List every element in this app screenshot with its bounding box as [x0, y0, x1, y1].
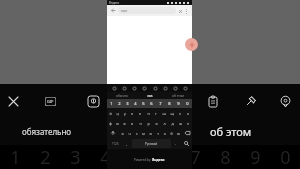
button[interactable]: д [168, 118, 176, 128]
button[interactable]: г [152, 108, 160, 118]
button[interactable]: как [118, 7, 176, 14]
button[interactable]: т [154, 128, 161, 138]
staticText: х [187, 111, 189, 116]
button[interactable]: GIF [42, 93, 58, 109]
button[interactable]: как [136, 92, 164, 99]
button[interactable]: р [144, 118, 152, 128]
button[interactable]: Close [5, 93, 21, 109]
button[interactable]: м [140, 128, 147, 138]
staticText: г [155, 111, 157, 116]
button[interactable]: с [133, 128, 140, 138]
button[interactable]: 0 [183, 99, 192, 108]
button[interactable]: е [136, 108, 144, 118]
button[interactable]: б [168, 128, 175, 138]
staticText: б [170, 131, 173, 136]
staticText: ?123 [112, 142, 119, 146]
button[interactable]: в [121, 118, 128, 128]
button[interactable]: 2 [115, 99, 123, 108]
button[interactable]: Shift [107, 128, 118, 138]
staticText: з [179, 111, 181, 116]
button[interactable]: ю [175, 128, 182, 138]
button[interactable]: об этом [164, 92, 192, 99]
button[interactable]: Keyboard tool 6 [162, 85, 168, 91]
button[interactable]: я [118, 128, 126, 138]
button[interactable]: 4 [131, 99, 139, 108]
staticText: 7 [159, 101, 162, 106]
staticText: 8 [220, 145, 231, 169]
button[interactable]: ш [160, 108, 168, 118]
staticText: р [147, 121, 150, 126]
staticText: 6 [150, 101, 153, 106]
button[interactable]: 8 [165, 99, 174, 108]
button[interactable]: Pin [243, 93, 259, 109]
button[interactable]: Keyboard tool 2 [121, 85, 127, 91]
button[interactable]: Backspace [182, 128, 192, 138]
button[interactable]: 3 [123, 99, 131, 108]
button[interactable]: Keyboard tool 7 [172, 85, 178, 91]
staticText: ф [109, 121, 112, 126]
button[interactable]: 5 [139, 99, 147, 108]
button[interactable]: Symbols [107, 138, 123, 149]
button[interactable]: ы [114, 118, 121, 128]
button[interactable]: Keyboard tool 4 [141, 85, 147, 91]
staticText: ч [128, 131, 131, 136]
staticText: об этом [210, 124, 252, 139]
button[interactable]: Back [110, 7, 117, 14]
button[interactable]: и [147, 128, 154, 138]
button[interactable]: а [128, 118, 136, 128]
button[interactable]: Keyboard tool 1 [111, 85, 117, 91]
button[interactable]: ж [176, 118, 184, 128]
button[interactable]: й [107, 108, 114, 118]
button[interactable]: Keyboard tool 3 [131, 85, 137, 91]
button[interactable]: э [184, 118, 192, 128]
button[interactable]: Period [172, 138, 180, 149]
staticText: 4 [100, 145, 111, 169]
button[interactable]: Clipboard [205, 93, 221, 109]
button[interactable]: х [184, 108, 192, 118]
staticText: 2 [40, 145, 51, 169]
button[interactable]: 1 [107, 99, 115, 108]
button[interactable]: ф [107, 118, 114, 128]
button[interactable]: Sticker [85, 93, 101, 109]
button[interactable]: к [128, 108, 136, 118]
button[interactable]: у [121, 108, 128, 118]
button[interactable]: Clear [177, 8, 183, 14]
button[interactable]: ц [114, 108, 121, 118]
button[interactable]: Keyboard tool 8 [182, 85, 188, 91]
button[interactable]: л [160, 118, 168, 128]
button[interactable]: Compose [185, 38, 198, 51]
staticText: щ [170, 111, 174, 116]
staticText: э [187, 121, 189, 126]
button[interactable]: п [136, 118, 144, 128]
staticText: й [109, 111, 112, 116]
staticText: п [139, 121, 142, 126]
button[interactable]: 6 [147, 99, 156, 108]
staticText: GIF [47, 99, 54, 104]
button[interactable]: о [152, 118, 160, 128]
button[interactable]: ч [126, 128, 133, 138]
staticText: 5 [130, 145, 141, 169]
button[interactable]: 9 [174, 99, 183, 108]
button[interactable]: Search [180, 138, 192, 149]
staticText: 6 [160, 145, 171, 169]
button[interactable]: н [144, 108, 152, 118]
button[interactable]: Keyboard tool 5 [152, 85, 158, 91]
button[interactable]: More options [183, 8, 189, 14]
button[interactable]: Location [277, 93, 293, 109]
button[interactable]: 7 [156, 99, 165, 108]
staticText: л [163, 121, 166, 126]
staticText: д [171, 121, 174, 126]
button[interactable]: обычно [107, 92, 136, 99]
staticText: 0 [280, 145, 291, 169]
staticText: , [126, 141, 128, 146]
button[interactable]: Русский [132, 139, 171, 148]
button[interactable]: Comma [123, 138, 131, 149]
staticText: 9 [250, 145, 261, 169]
staticText: к [131, 111, 133, 116]
staticText: е [139, 111, 141, 116]
staticText: 2 [118, 101, 121, 106]
staticText: 9 [177, 101, 180, 106]
button[interactable]: ь [161, 128, 168, 138]
button[interactable]: щ [168, 108, 176, 118]
button[interactable]: з [176, 108, 184, 118]
